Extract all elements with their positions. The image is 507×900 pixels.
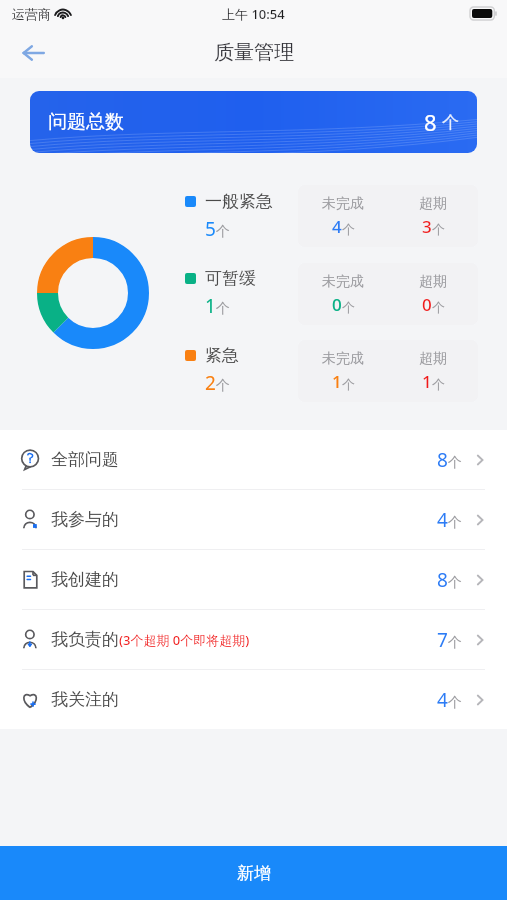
staticText: 超期 [419,195,447,213]
staticText: 质量管理 [214,40,294,65]
button[interactable]: Back [14,33,54,73]
staticText: 4 [437,687,448,713]
staticText: 个 [432,376,445,392]
staticText: 紧急 [205,345,239,366]
staticText: 我关注的 [51,689,119,710]
staticText: 超期 [419,350,447,368]
staticText: 个 [448,454,462,472]
button[interactable]: 我创建的 [0,550,507,609]
button[interactable]: 全部问题 [0,430,507,489]
staticText: 7 [437,627,448,653]
button[interactable]: 问题总数 [30,91,477,153]
button[interactable]: 我负责的(3个超期 0个即将超期) [0,610,507,669]
staticText: 新增 [237,863,271,884]
staticText: 个 [342,299,355,315]
button[interactable]: 未完成 [298,340,478,402]
staticText: 0 [422,293,432,316]
staticText: 可暂缓 [205,268,256,289]
staticText: 运营商 [12,6,51,22]
staticText: 个 [448,574,462,592]
staticText: 个 [448,634,462,652]
staticText: 个 [448,514,462,532]
staticText: 个 [448,694,462,712]
button[interactable]: 我参与的 [0,490,507,549]
staticText: 个 [442,112,459,133]
staticText: 5 [205,216,216,242]
staticText: 8 [424,107,437,137]
button[interactable]: 未完成 [298,263,478,325]
staticText: 超期 [419,273,447,291]
staticText: 问题总数 [48,110,124,134]
staticText: 1 [422,370,432,393]
staticText: 我负责的(3个超期 0个即将超期) [51,629,250,650]
staticText: 个 [216,377,230,395]
staticText: 未完成 [322,195,364,213]
staticText: 个 [216,223,230,241]
staticText: 一般紧急 [205,191,273,212]
staticText: 2 [205,370,216,396]
staticText: 上午 10:54 [222,5,285,23]
staticText: 个 [216,300,230,318]
staticText: 3 [422,215,432,238]
staticText: 个 [342,221,355,237]
staticText: 个 [432,299,445,315]
staticText: 个 [342,376,355,392]
staticText: 个 [432,221,445,237]
button[interactable]: 未完成 [298,185,478,247]
staticText: 未完成 [322,350,364,368]
staticText: 我参与的 [51,509,119,530]
staticText: 8 [437,567,448,593]
staticText: 4 [437,507,448,533]
staticText: 8 [437,447,448,473]
button[interactable]: 我关注的 [0,670,507,729]
staticText: 1 [332,370,342,393]
staticText: 我创建的 [51,569,119,590]
staticText: 1 [205,293,216,319]
staticText: 全部问题 [51,449,119,470]
button[interactable]: 新增 [0,846,507,900]
staticText: 0 [332,293,342,316]
staticText: 4 [332,215,342,238]
staticText: 未完成 [322,273,364,291]
